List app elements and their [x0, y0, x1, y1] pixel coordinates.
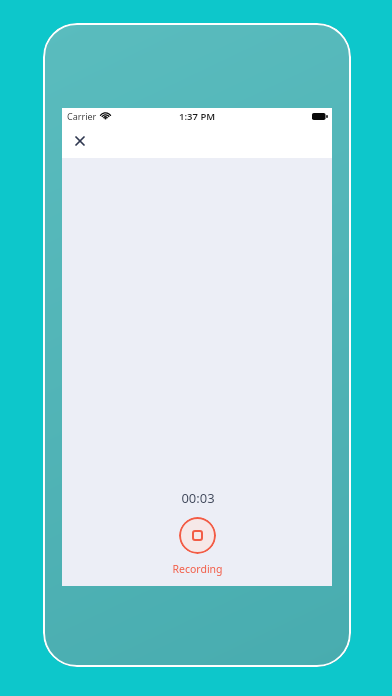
staticText: 00:03 [181, 489, 215, 507]
staticText: Recording [172, 562, 223, 576]
button[interactable] [71, 132, 89, 150]
button[interactable] [179, 517, 216, 554]
staticText: 1:37 PM [179, 110, 216, 123]
staticText: Carrier [67, 110, 97, 122]
